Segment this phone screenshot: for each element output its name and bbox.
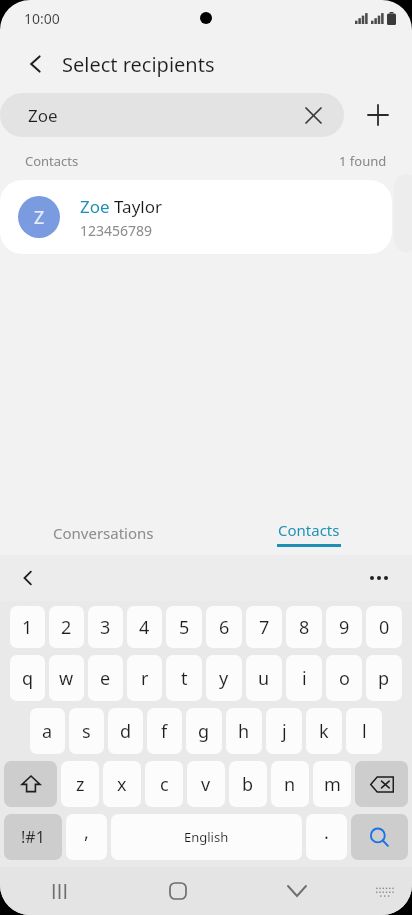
staticText: c	[160, 772, 169, 797]
staticText: Contacts	[25, 152, 79, 170]
staticText: ,	[84, 820, 89, 845]
staticText: 1	[22, 615, 33, 640]
button[interactable]: Z	[0, 180, 392, 254]
button[interactable]: 4	[127, 606, 162, 648]
button[interactable]: Contacts	[206, 511, 412, 555]
button[interactable]: 0	[366, 606, 402, 648]
button[interactable]: g	[186, 708, 222, 754]
button[interactable]: j	[266, 708, 302, 754]
button[interactable]: 1	[10, 606, 45, 648]
staticText: f	[161, 719, 168, 744]
button[interactable]: t	[166, 655, 202, 701]
staticText: o	[339, 666, 350, 691]
button[interactable]: i	[286, 655, 322, 701]
button[interactable]: Previous	[8, 558, 48, 598]
button[interactable]: o	[326, 655, 362, 701]
staticText: d	[120, 719, 132, 744]
staticText: v	[201, 772, 211, 797]
button[interactable]: y	[206, 655, 242, 701]
staticText: z	[76, 772, 85, 797]
button[interactable]: Add recipient	[344, 92, 412, 138]
button[interactable]: r	[127, 655, 162, 701]
button[interactable]: .	[306, 814, 347, 860]
button[interactable]: l	[346, 708, 382, 754]
button[interactable]: Zoe	[0, 93, 344, 137]
button[interactable]: Home	[118, 867, 237, 915]
staticText: y	[219, 666, 229, 691]
staticText: k	[319, 719, 329, 744]
staticText: 6	[219, 615, 230, 640]
staticText: Zoe Taylor	[80, 195, 163, 218]
staticText: Conversations	[53, 523, 154, 543]
button[interactable]: a	[30, 708, 65, 754]
staticText: e	[100, 666, 111, 691]
button[interactable]: ,	[66, 814, 107, 860]
button[interactable]: z	[61, 761, 99, 807]
button[interactable]: Recent apps	[0, 867, 118, 915]
button[interactable]: 6	[206, 606, 242, 648]
staticText: 1 found	[339, 152, 387, 170]
staticText: 8	[299, 615, 310, 640]
button[interactable]: s	[69, 708, 104, 754]
button[interactable]: h	[226, 708, 262, 754]
staticText: Z	[34, 205, 45, 230]
button[interactable]: More options	[360, 559, 398, 597]
button[interactable]: English	[111, 814, 302, 860]
staticText: 10:00	[24, 9, 60, 28]
button[interactable]: n	[271, 761, 309, 807]
staticText: 0	[379, 615, 390, 640]
staticText: 123456789	[80, 221, 153, 240]
button[interactable]: v	[187, 761, 225, 807]
button[interactable]: x	[103, 761, 141, 807]
staticText: 2	[61, 615, 72, 640]
button[interactable]: f	[147, 708, 182, 754]
button[interactable]: p	[366, 655, 402, 701]
button[interactable]: 5	[166, 606, 202, 648]
button[interactable]: Keyboard layout	[356, 867, 412, 915]
button[interactable]: u	[246, 655, 282, 701]
button[interactable]: e	[88, 655, 123, 701]
staticText: x	[117, 772, 127, 797]
button[interactable]: d	[108, 708, 143, 754]
staticText: 9	[339, 615, 350, 640]
staticText: w	[59, 666, 74, 691]
staticText: n	[284, 772, 296, 797]
staticText: 4	[139, 615, 150, 640]
staticText: 7	[259, 615, 270, 640]
staticText: b	[242, 772, 254, 797]
button[interactable]: q	[10, 655, 45, 701]
button[interactable]: 7	[246, 606, 282, 648]
staticText: t	[181, 666, 188, 691]
button[interactable]: Clear	[298, 100, 328, 130]
button[interactable]: 3	[88, 606, 123, 648]
staticText: g	[198, 719, 210, 744]
staticText: Contacts	[278, 520, 340, 540]
button[interactable]: c	[145, 761, 183, 807]
staticText: 5	[179, 615, 190, 640]
button[interactable]: 2	[49, 606, 84, 648]
button[interactable]: 9	[326, 606, 362, 648]
button[interactable]: Search	[351, 814, 408, 860]
staticText: a	[42, 719, 53, 744]
button[interactable]: Shift	[4, 761, 57, 807]
staticText: i	[302, 666, 307, 691]
button[interactable]: 8	[286, 606, 322, 648]
button[interactable]: w	[49, 655, 84, 701]
button[interactable]: k	[306, 708, 342, 754]
staticText: Select recipients	[62, 51, 215, 78]
staticText: p	[378, 666, 390, 691]
button[interactable]: b	[229, 761, 267, 807]
staticText: English	[184, 828, 229, 846]
staticText: h	[238, 719, 250, 744]
button[interactable]: Conversations	[0, 511, 206, 555]
staticText: u	[258, 666, 270, 691]
button[interactable]: !#1	[4, 814, 62, 860]
button[interactable]: Backspace	[355, 761, 408, 807]
staticText: m	[324, 772, 341, 797]
staticText: Zoe	[28, 104, 298, 127]
staticText: l	[362, 719, 367, 744]
staticText: 3	[100, 615, 111, 640]
button[interactable]: m	[313, 761, 351, 807]
button[interactable]: Hide keyboard	[237, 867, 356, 915]
button[interactable]: Back	[14, 42, 58, 86]
